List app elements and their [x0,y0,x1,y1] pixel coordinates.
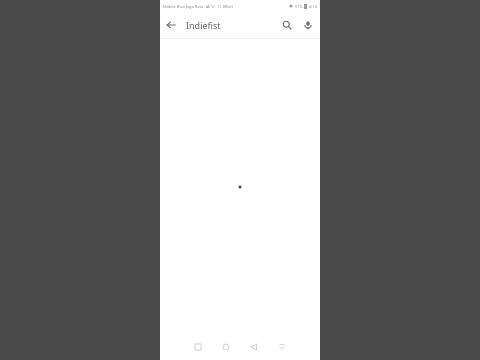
button[interactable]: Voice search [298,14,318,36]
button[interactable]: Navigate up [160,14,182,36]
button[interactable]: Search [276,14,298,36]
staticText: 11.0Kb/s [217,4,234,9]
button[interactable]: Hide keyboard [271,336,293,358]
button[interactable]: Back [243,336,265,358]
button[interactable]: Home [215,336,237,358]
staticText: 4:10 [309,4,317,9]
staticText: Indiefist [186,19,276,31]
button[interactable]: Recent apps [187,336,209,358]
staticText: 51% [295,4,303,9]
staticText: Mobile Bisa Jaga Rata [163,4,204,9]
